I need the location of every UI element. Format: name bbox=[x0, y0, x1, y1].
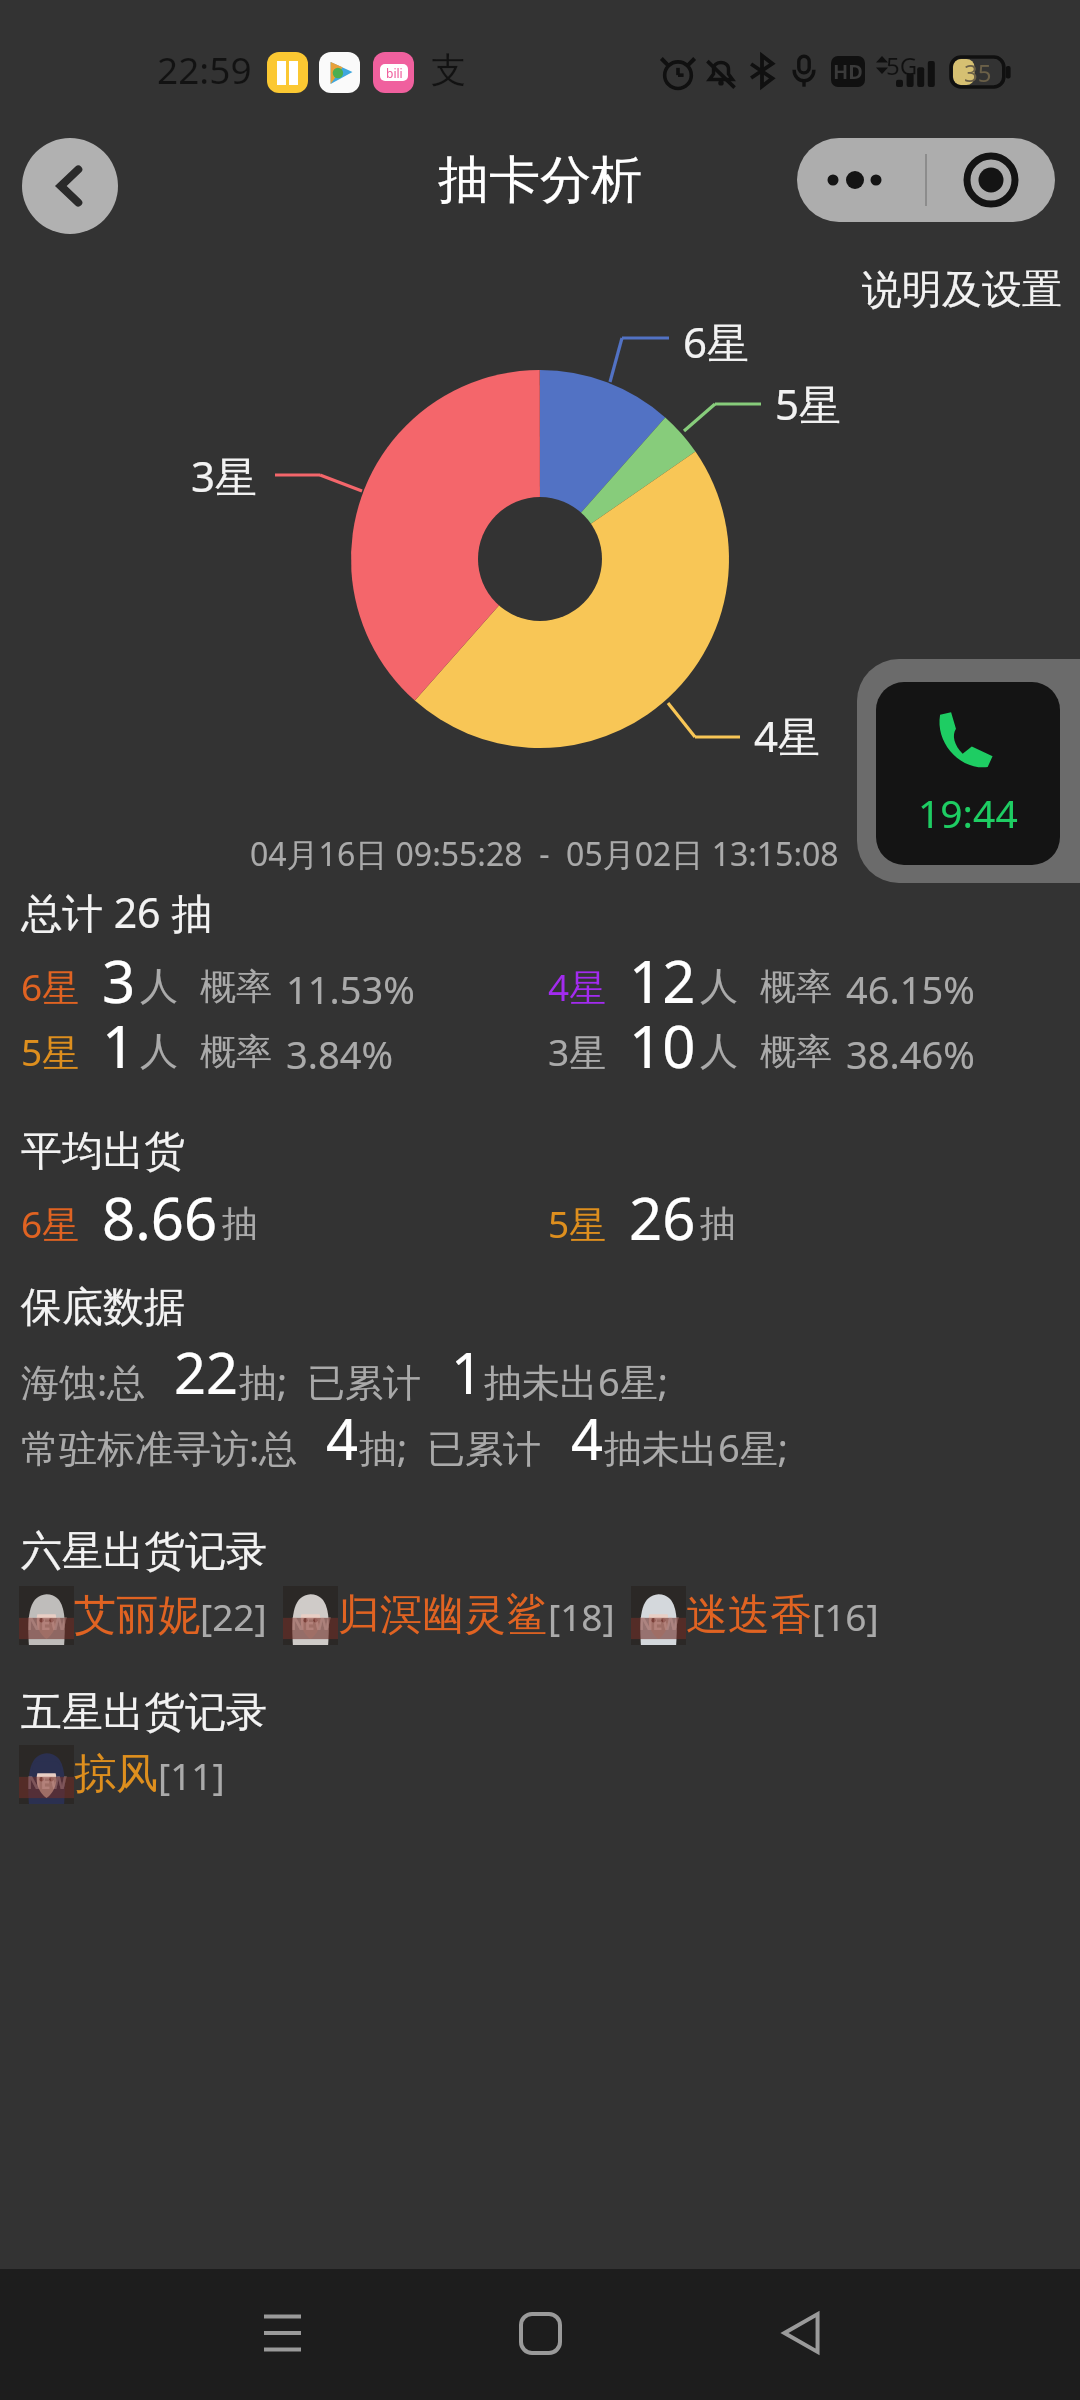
staticText: 迷迭香 bbox=[686, 1589, 812, 1642]
staticText: 6星 bbox=[21, 1198, 80, 1249]
staticText: 海蚀:总 bbox=[21, 1355, 156, 1407]
staticText: 35 bbox=[964, 56, 992, 86]
staticText: 3星 bbox=[548, 1026, 607, 1077]
staticText: NEW bbox=[27, 1771, 67, 1794]
staticText: 人 bbox=[140, 962, 178, 1010]
staticText: 抽卡分析 bbox=[438, 148, 642, 212]
staticText: 艾丽妮 bbox=[74, 1589, 200, 1642]
staticText: 保底数据 bbox=[21, 1282, 185, 1334]
staticText: 6星 bbox=[21, 961, 80, 1012]
button[interactable]: NEW bbox=[283, 1586, 615, 1645]
staticText: 常驻标准寻访:总 bbox=[21, 1421, 308, 1473]
staticText: 8.66 bbox=[102, 1178, 218, 1257]
staticText: 5星 bbox=[775, 375, 842, 432]
staticText: 1 bbox=[102, 1006, 136, 1085]
staticText: 概率 bbox=[200, 1029, 272, 1074]
staticText: 19:44 bbox=[918, 786, 1018, 839]
staticText: NEW bbox=[27, 1612, 67, 1635]
staticText: 38.46% bbox=[846, 1028, 975, 1080]
button[interactable]: Close mini program bbox=[927, 138, 1055, 222]
staticText: 概率 bbox=[760, 1029, 832, 1074]
staticText: 12 bbox=[629, 941, 696, 1020]
staticText: 4星 bbox=[754, 707, 821, 764]
staticText: [11] bbox=[158, 1750, 225, 1800]
button[interactable]: 说明及设置 bbox=[862, 264, 1062, 314]
staticText: 抽未出6星; bbox=[604, 1421, 788, 1473]
staticText: 五星出货记录 bbox=[21, 1687, 267, 1739]
staticText: NEW bbox=[639, 1612, 679, 1635]
staticText: 人 bbox=[700, 1027, 738, 1075]
staticText: 抽 bbox=[222, 1201, 258, 1246]
staticText: 10 bbox=[629, 1006, 696, 1085]
staticText: 平均出货 bbox=[21, 1126, 185, 1178]
staticText: HD bbox=[833, 58, 863, 85]
staticText: 4 bbox=[571, 1400, 604, 1476]
staticText: 支 bbox=[431, 48, 466, 92]
button[interactable]: Recent apps bbox=[222, 2273, 342, 2393]
staticText: NEW bbox=[291, 1612, 331, 1635]
staticText: 总计 26 抽 bbox=[21, 884, 213, 940]
staticText: 人 bbox=[140, 1027, 178, 1075]
staticText: 5G bbox=[886, 49, 918, 82]
staticText: 11.53% bbox=[286, 963, 415, 1015]
staticText: 5星 bbox=[548, 1198, 607, 1249]
staticText: 46.15% bbox=[846, 963, 975, 1015]
staticText: 抽未出6星; bbox=[484, 1355, 668, 1407]
staticText: 抽; 已累计 bbox=[359, 1421, 551, 1473]
button[interactable]: Home bbox=[480, 2273, 600, 2393]
button[interactable]: 19:44 bbox=[857, 659, 1080, 883]
staticText: 26 bbox=[629, 1178, 696, 1257]
staticText: 04月16日 09:55:28 - 05月02日 13:15:08 bbox=[250, 832, 839, 876]
staticText: 1 bbox=[451, 1334, 484, 1410]
staticText: 3星 bbox=[191, 447, 258, 504]
staticText: 归溟幽灵鲨 bbox=[338, 1589, 548, 1642]
staticText: 5星 bbox=[21, 1026, 80, 1077]
staticText: 6星 bbox=[683, 313, 750, 370]
staticText: 22:59 bbox=[157, 44, 252, 94]
staticText: 4 bbox=[326, 1400, 359, 1476]
button[interactable]: NEW bbox=[19, 1586, 267, 1645]
staticText: 3.84% bbox=[286, 1028, 393, 1080]
staticText: 抽 bbox=[700, 1201, 736, 1246]
staticText: 掠风 bbox=[74, 1748, 158, 1801]
staticText: 4星 bbox=[548, 961, 607, 1012]
staticText: 概率 bbox=[760, 964, 832, 1009]
staticText: 概率 bbox=[200, 964, 272, 1009]
button[interactable]: NEW bbox=[19, 1745, 225, 1804]
staticText: 22 bbox=[174, 1334, 239, 1410]
staticText: [18] bbox=[548, 1591, 615, 1641]
staticText: 3 bbox=[102, 941, 136, 1020]
staticText: 人 bbox=[700, 962, 738, 1010]
staticText: [22] bbox=[200, 1591, 267, 1641]
staticText: 抽; 已累计 bbox=[239, 1355, 431, 1407]
staticText: [16] bbox=[812, 1591, 879, 1641]
staticText: 六星出货记录 bbox=[21, 1526, 267, 1578]
button[interactable]: NEW bbox=[631, 1586, 879, 1645]
button[interactable]: Back bbox=[741, 2273, 861, 2393]
button[interactable]: More options bbox=[797, 138, 925, 222]
button[interactable]: Back bbox=[22, 138, 118, 234]
staticText: bili bbox=[386, 65, 403, 81]
